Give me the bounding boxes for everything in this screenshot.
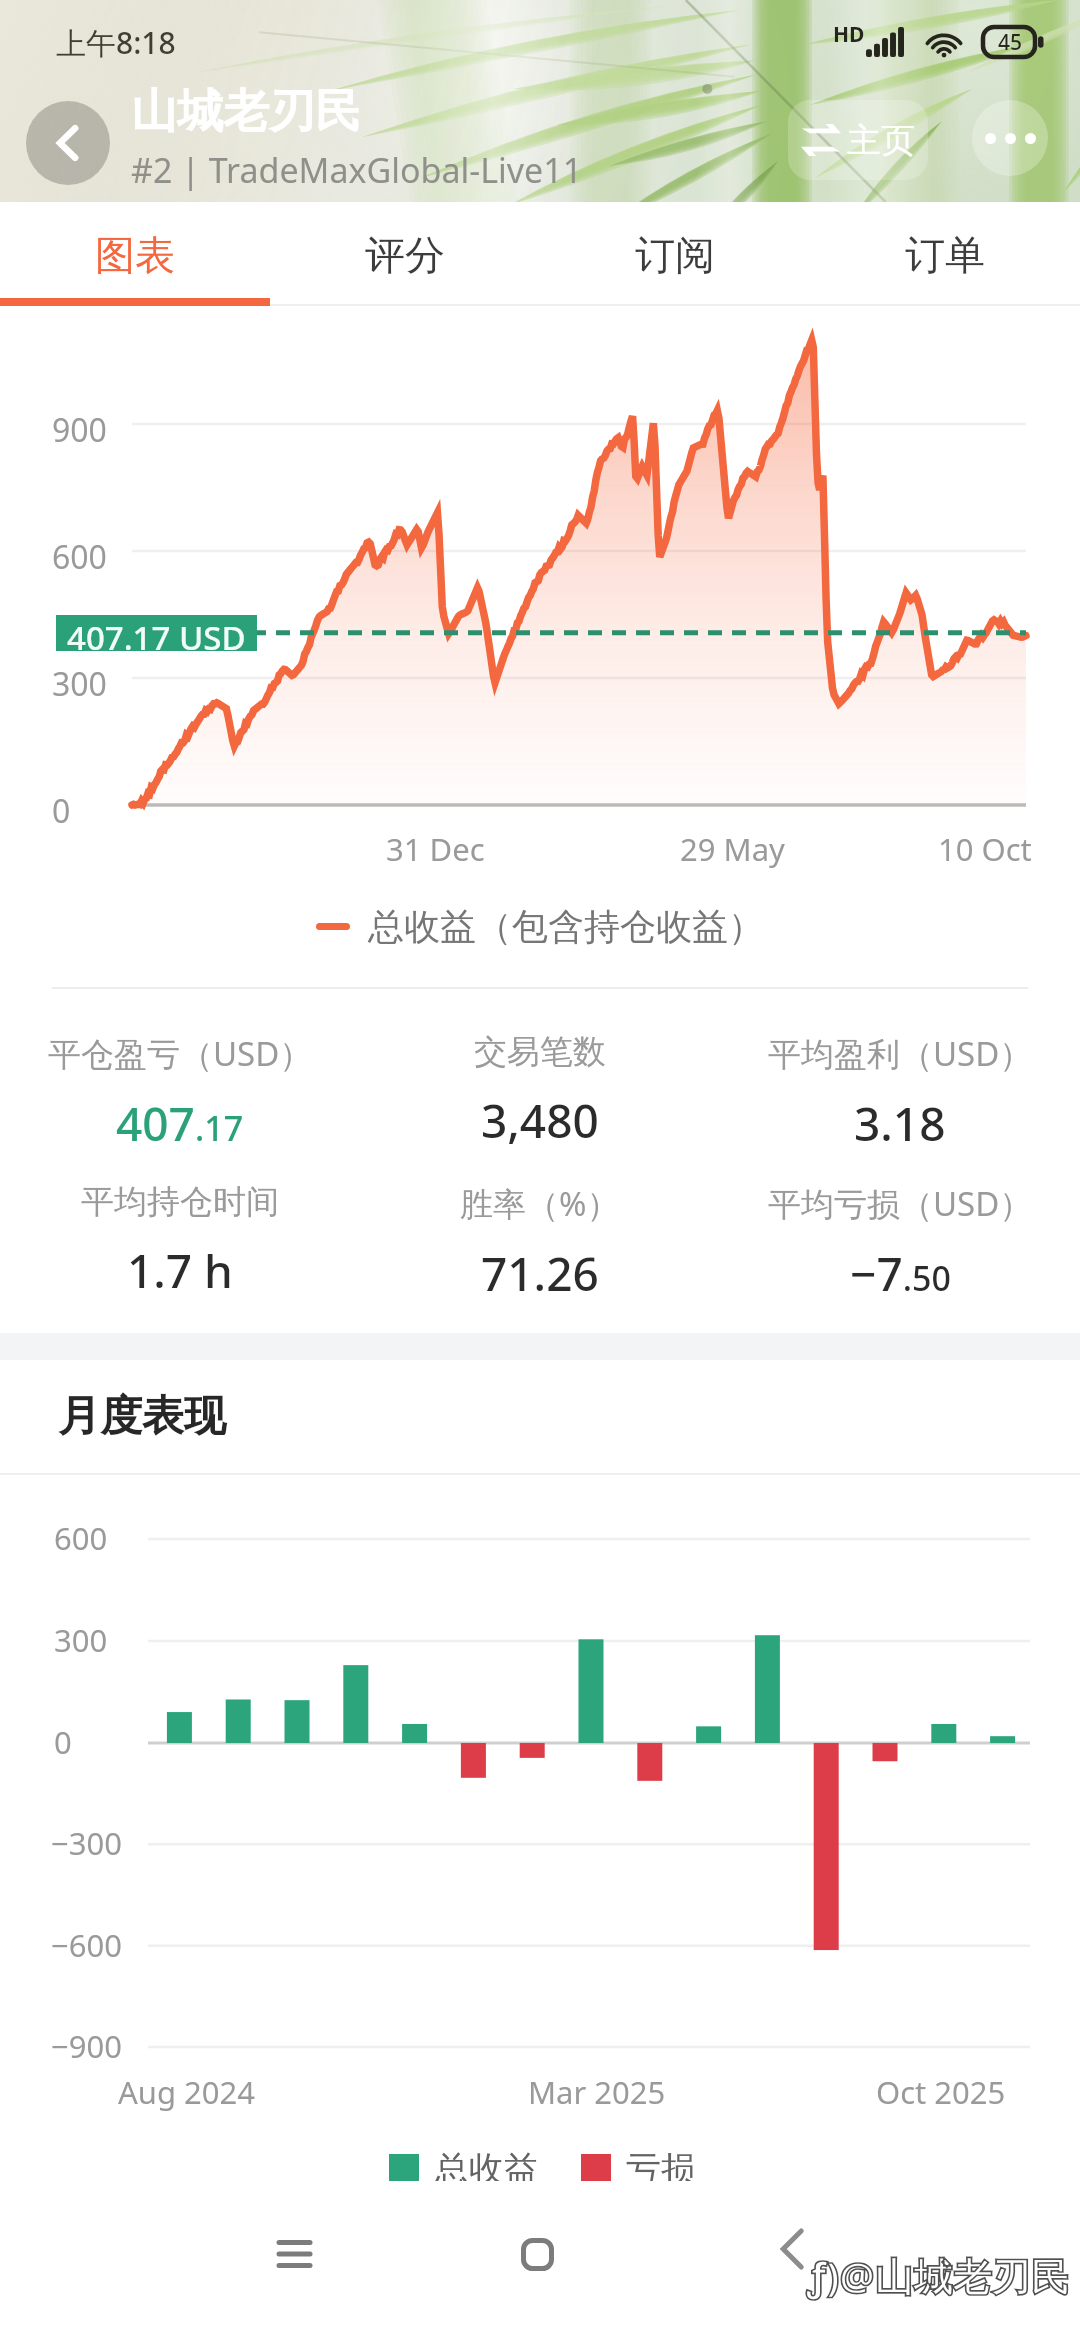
button[interactable]: 图表: [0, 202, 270, 298]
staticText: 平均亏损（USD）: [768, 1181, 1033, 1226]
staticText: 3,480: [481, 1089, 599, 1152]
button[interactable]: 评分: [270, 202, 540, 298]
staticText: 600: [52, 535, 107, 579]
staticText: 31 Dec: [386, 828, 485, 870]
staticText: 山城老刃民: [131, 83, 361, 141]
staticText: #2 | TradeMaxGlobal-Live11: [131, 147, 583, 193]
staticText: 评分: [365, 230, 445, 280]
staticText: 407.17: [116, 1092, 244, 1155]
staticText: 45: [998, 28, 1023, 57]
staticText: 平均盈利（USD）: [768, 1031, 1033, 1076]
staticText: 0: [52, 789, 71, 833]
staticText: 600: [54, 1517, 108, 1559]
staticText: Mar 2025: [528, 2071, 666, 2113]
staticText: 上午8:18: [56, 22, 176, 63]
staticText: 0: [54, 1721, 72, 1763]
button[interactable]: Recent apps: [239, 2199, 349, 2309]
staticText: −300: [51, 1822, 122, 1864]
staticText: −7.50: [850, 1242, 951, 1305]
staticText: 月度表现: [58, 1390, 226, 1443]
staticText: 300: [54, 1619, 108, 1661]
staticText: −900: [51, 2025, 122, 2067]
button[interactable]: 订阅: [540, 202, 810, 298]
button[interactable]: 主页: [788, 100, 928, 180]
staticText: 总收益: [434, 2147, 539, 2191]
staticText: ƒ)@山城老刃民: [806, 2249, 1070, 2302]
button[interactable]: 订单: [810, 202, 1080, 298]
staticText: 900: [52, 408, 107, 452]
staticText: 订单: [905, 230, 985, 280]
staticText: 平仓盈亏（USD）: [48, 1031, 313, 1076]
button[interactable]: Home: [482, 2199, 592, 2309]
staticText: 407.17 USD: [67, 615, 246, 651]
staticText: 71.26: [481, 1242, 599, 1305]
staticText: −600: [51, 1924, 122, 1966]
staticText: Oct 2025: [876, 2071, 1006, 2113]
button[interactable]: More options: [972, 100, 1048, 176]
staticText: 10 Oct: [938, 828, 1032, 870]
staticText: 1.7 h: [127, 1239, 233, 1302]
staticText: 主页: [847, 119, 915, 162]
staticText: 胜率（%）: [460, 1181, 620, 1226]
button[interactable]: Back: [26, 101, 110, 185]
staticText: 300: [52, 662, 107, 706]
staticText: 亏损: [626, 2147, 696, 2191]
button[interactable]: Back: [742, 2199, 842, 2299]
staticText: 图表: [95, 230, 175, 280]
staticText: 订阅: [635, 230, 715, 280]
staticText: HD: [833, 20, 865, 49]
staticText: 交易笔数: [474, 1031, 606, 1073]
staticText: Aug 2024: [118, 2071, 256, 2113]
staticText: 29 May: [680, 828, 785, 870]
staticText: 3.18: [854, 1092, 946, 1155]
staticText: 平均持仓时间: [81, 1181, 279, 1223]
staticText: 总收益（包含持仓收益）: [368, 904, 764, 949]
